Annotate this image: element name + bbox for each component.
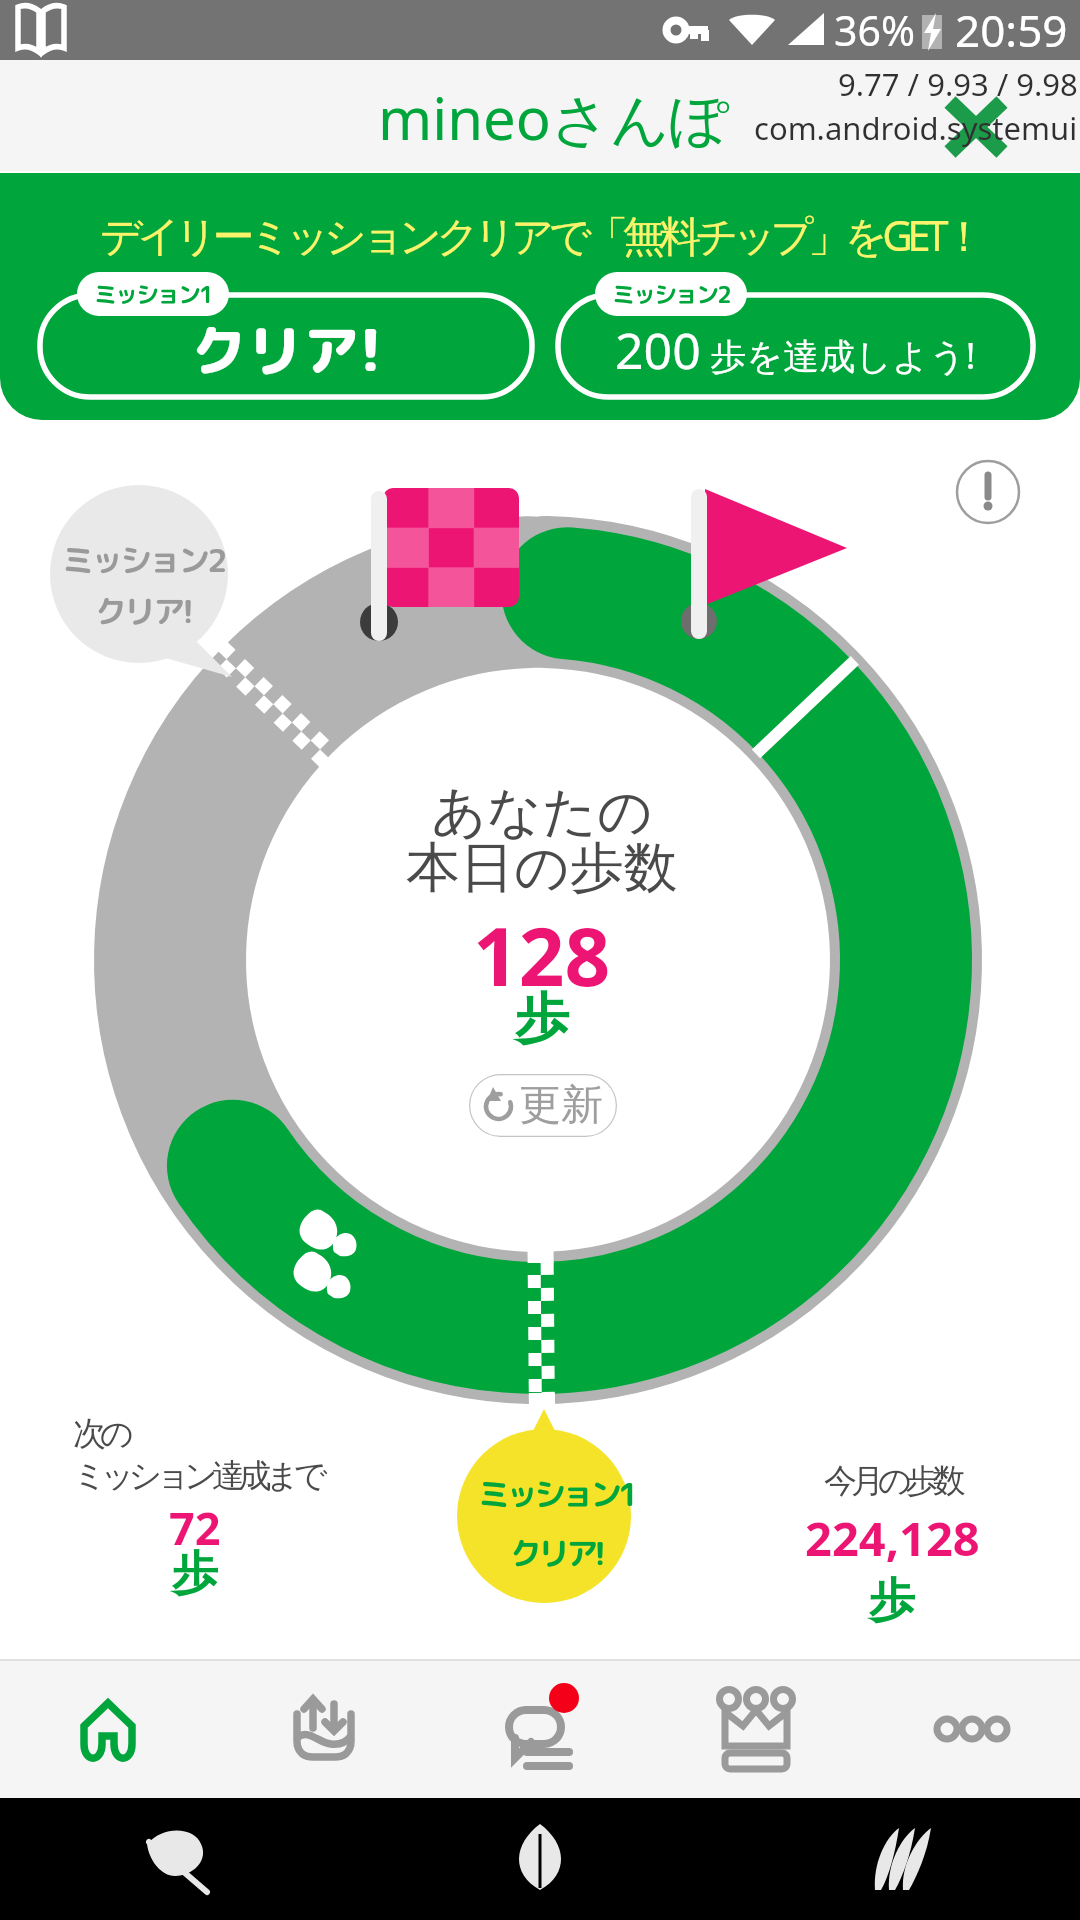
staticText: ミッション1 bbox=[94, 278, 212, 310]
staticText: 224,128 bbox=[805, 1506, 980, 1570]
staticText: 72 bbox=[169, 1497, 221, 1558]
staticText: ミッション2 bbox=[62, 538, 225, 583]
staticText: com.android.systemui bbox=[754, 107, 1078, 149]
button[interactable]: Recents bbox=[720, 1798, 1080, 1920]
staticText: 20:59 bbox=[955, 0, 1068, 60]
staticText: ミッション達成まで bbox=[73, 1455, 322, 1497]
staticText: 歩 bbox=[869, 1572, 915, 1630]
staticText: あなたの bbox=[431, 778, 653, 846]
staticText: 更新 bbox=[519, 1079, 603, 1132]
staticText: クリア! bbox=[95, 589, 192, 634]
staticText: 歩 bbox=[172, 1545, 218, 1603]
button[interactable]: Back bbox=[0, 1798, 360, 1920]
staticText: 200 bbox=[615, 316, 701, 384]
button[interactable]: Rewards bbox=[648, 1659, 864, 1798]
staticText: mineoさんぽ bbox=[378, 78, 729, 157]
staticText: ミッション2 bbox=[612, 278, 730, 310]
staticText: クリア! bbox=[510, 1531, 603, 1576]
button[interactable]: Information bbox=[956, 460, 1020, 524]
button[interactable]: Data bbox=[216, 1659, 432, 1798]
staticText: デイリーミッションクリアで「無料チップ」をGET！ bbox=[100, 206, 980, 263]
button[interactable]: ミッション1 bbox=[37, 272, 535, 400]
staticText: 36% bbox=[834, 2, 915, 58]
staticText: クリア! bbox=[191, 311, 382, 389]
button[interactable]: Home bbox=[360, 1798, 720, 1920]
staticText: 9.77 / 9.93 / 9.98 bbox=[838, 63, 1078, 105]
staticText: 128 bbox=[473, 900, 611, 1009]
button[interactable]: 更新 bbox=[469, 1074, 617, 1137]
staticText: 次の bbox=[73, 1413, 128, 1455]
staticText: 今月の歩数 bbox=[824, 1460, 960, 1502]
button[interactable]: More bbox=[864, 1659, 1080, 1798]
staticText: ミッション1 bbox=[478, 1472, 635, 1517]
staticText: 本日の歩数 bbox=[406, 834, 678, 902]
staticText: 歩を達成しよう! bbox=[701, 331, 976, 380]
staticText: 歩 bbox=[515, 985, 569, 1053]
button[interactable]: Home bbox=[0, 1659, 216, 1798]
button[interactable]: ミッション2 bbox=[555, 272, 1036, 400]
button[interactable]: Messages bbox=[432, 1659, 648, 1798]
